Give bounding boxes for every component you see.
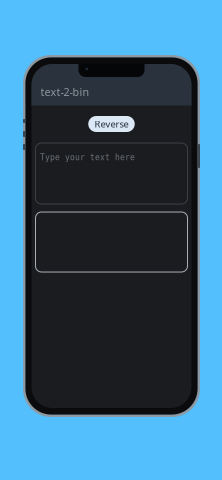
staticText: Reverse — [94, 118, 128, 130]
button[interactable]: Reverse — [88, 116, 135, 132]
staticText: Type your text here — [40, 153, 135, 162]
staticText: text-2-bin — [40, 85, 89, 99]
